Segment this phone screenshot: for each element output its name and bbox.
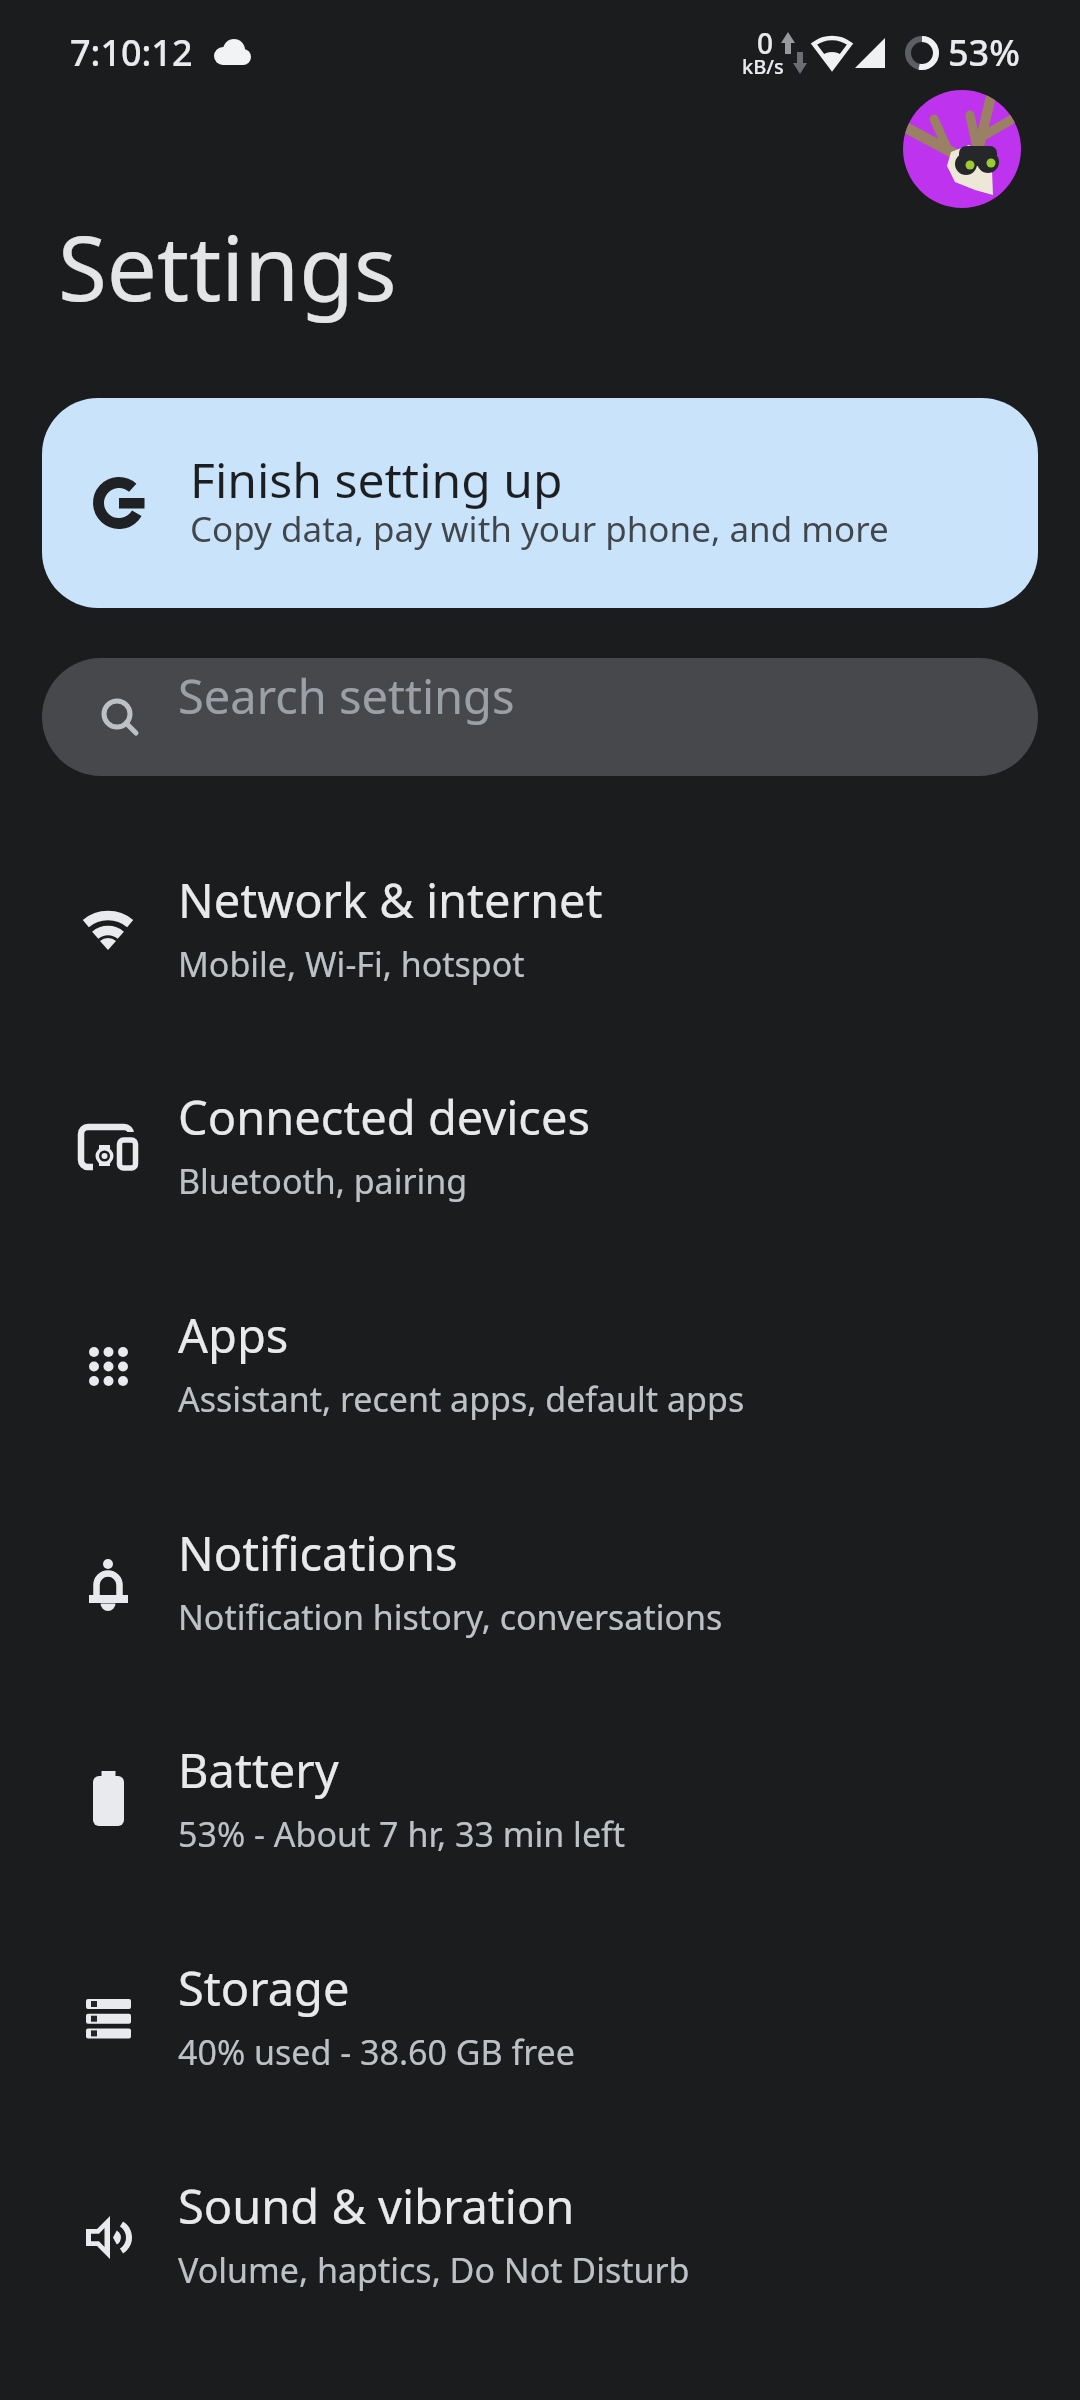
- button[interactable]: Notifications: [0, 1471, 1080, 1689]
- staticText: Assistant, recent apps, default apps: [178, 1376, 745, 1422]
- staticText: 0: [757, 24, 774, 62]
- staticText: kB/s: [742, 53, 784, 80]
- staticText: 53% - About 7 hr, 33 min left: [178, 1811, 626, 1857]
- button[interactable]: Network & internet: [0, 818, 1080, 1036]
- button[interactable]: Sound & vibration: [0, 2124, 1080, 2342]
- button[interactable]: Search settings: [42, 658, 1038, 776]
- staticText: Mobile, Wi-Fi, hotspot: [178, 941, 525, 987]
- staticText: Apps: [178, 1303, 289, 1367]
- staticText: Storage: [178, 1956, 350, 2020]
- staticText: Connected devices: [178, 1085, 590, 1149]
- staticText: Bluetooth, pairing: [178, 1158, 468, 1204]
- button[interactable]: Connected devices: [0, 1035, 1080, 1253]
- button[interactable]: Apps: [0, 1253, 1080, 1471]
- button[interactable]: Storage: [0, 1906, 1080, 2124]
- staticText: 53%: [948, 28, 1020, 77]
- staticText: Sound & vibration: [178, 2174, 575, 2238]
- button[interactable]: Finish setting up: [42, 398, 1038, 608]
- button[interactable]: [903, 90, 1021, 208]
- staticText: Settings: [58, 206, 397, 327]
- staticText: Notifications: [178, 1521, 458, 1585]
- staticText: Notification history, conversations: [178, 1594, 723, 1640]
- staticText: Volume, haptics, Do Not Disturb: [178, 2247, 690, 2293]
- button[interactable]: Battery: [0, 1688, 1080, 1906]
- staticText: Search settings: [178, 664, 515, 728]
- staticText: Copy data, pay with your phone, and more: [190, 505, 889, 553]
- staticText: 7:10:12: [70, 28, 193, 77]
- staticText: 40% used - 38.60 GB free: [178, 2029, 575, 2075]
- staticText: Battery: [178, 1738, 339, 1802]
- staticText: Finish setting up: [190, 447, 563, 512]
- staticText: Network & internet: [178, 868, 603, 932]
